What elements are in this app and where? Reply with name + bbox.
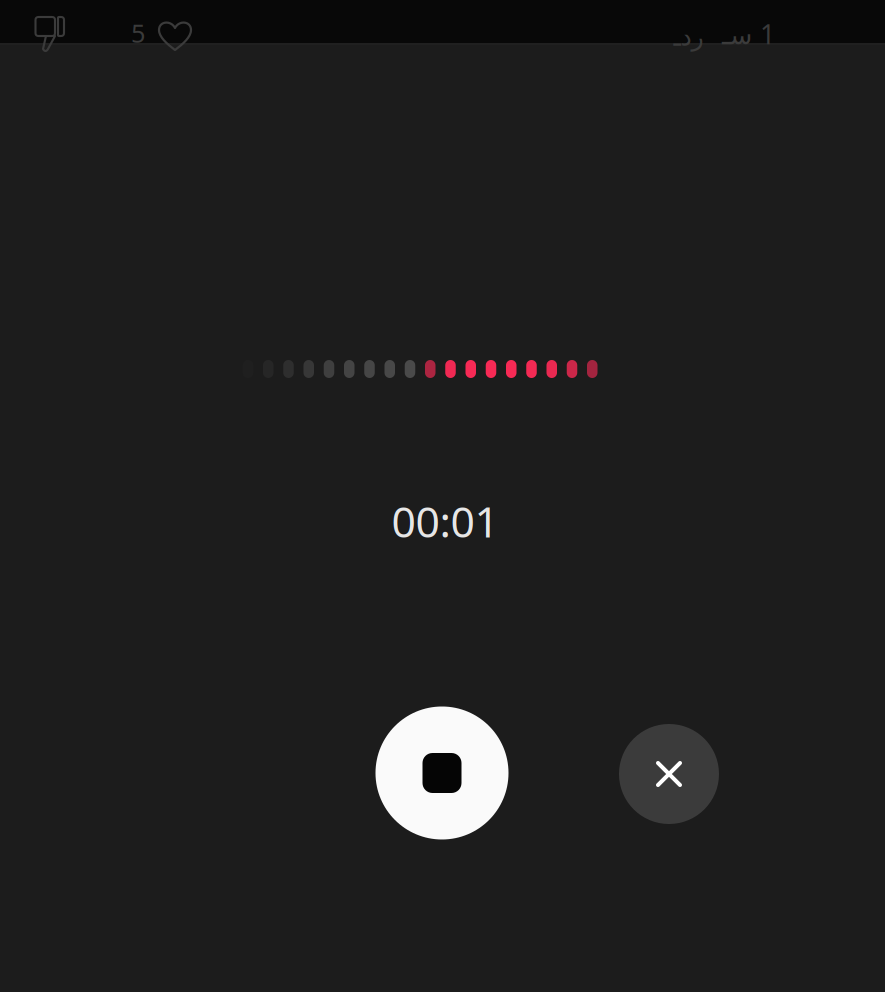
- button[interactable]: Stop recording: [375, 706, 508, 839]
- staticText: ردـ: [673, 23, 703, 51]
- staticText: 00:01: [391, 493, 498, 549]
- staticText: 1 سـ: [721, 16, 774, 52]
- button[interactable]: Cancel recording: [619, 724, 719, 824]
- staticText: 5: [131, 16, 145, 50]
